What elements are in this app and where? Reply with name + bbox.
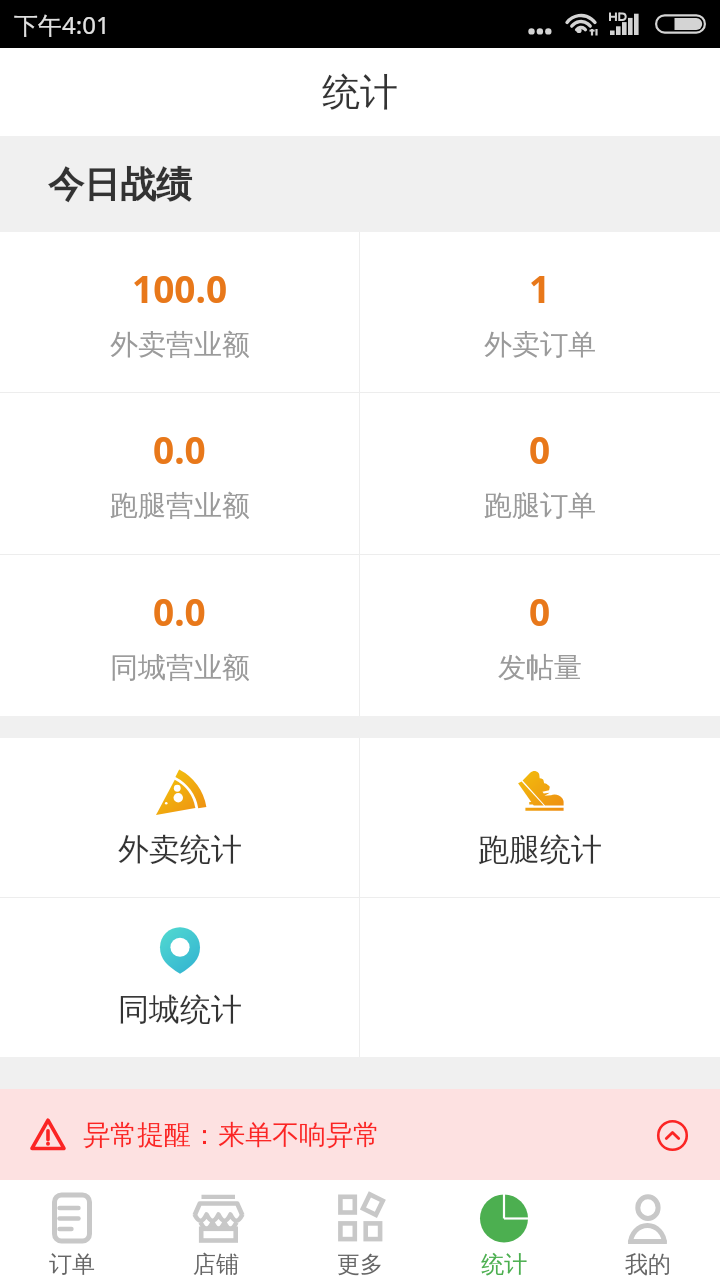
button[interactable]: 0.0 (0, 555, 359, 716)
staticText: 0 (529, 586, 551, 636)
staticText: 统计 (481, 1250, 527, 1279)
staticText: 同城营业额 (110, 650, 250, 685)
staticText: 更多 (337, 1250, 383, 1279)
staticText: 我的 (625, 1250, 671, 1279)
button[interactable]: 订单 (0, 1180, 144, 1280)
button[interactable]: 0 (360, 555, 720, 716)
staticText: 跑腿营业额 (110, 488, 250, 523)
staticText: 外卖统计 (118, 830, 242, 869)
button[interactable]: 收起异常提醒 (652, 1115, 692, 1155)
button[interactable]: 店铺 (144, 1180, 288, 1280)
button[interactable]: 0 (360, 393, 720, 554)
staticText: 下午4:01 (14, 8, 110, 41)
staticText: 0.0 (153, 586, 206, 636)
staticText: 同城统计 (118, 990, 242, 1029)
staticText: 100.0 (132, 263, 228, 313)
button[interactable]: 1 (360, 232, 720, 392)
staticText: 跑腿订单 (484, 488, 596, 523)
staticText: 外卖订单 (484, 327, 596, 362)
staticText: 统计 (322, 68, 398, 116)
staticText: 1 (529, 263, 551, 313)
button[interactable]: 异常提醒：来单不响异常 (0, 1089, 720, 1180)
button[interactable]: 100.0 (0, 232, 359, 392)
button[interactable]: 跑腿统计 (360, 738, 720, 897)
button[interactable]: 同城统计 (0, 898, 359, 1057)
button[interactable]: 统计 (432, 1180, 576, 1280)
staticText: 异常提醒：来单不响异常 (83, 1118, 380, 1152)
staticText: 跑腿统计 (478, 830, 602, 869)
button[interactable]: 0.0 (0, 393, 359, 554)
staticText: 外卖营业额 (110, 327, 250, 362)
button[interactable]: 更多 (288, 1180, 432, 1280)
staticText: 0 (529, 424, 551, 474)
staticText: 发帖量 (498, 650, 582, 685)
staticText: 订单 (49, 1250, 95, 1279)
button[interactable]: 我的 (576, 1180, 720, 1280)
staticText: 店铺 (193, 1250, 239, 1279)
button[interactable]: 外卖统计 (0, 738, 359, 897)
staticText: 今日战绩 (48, 162, 192, 207)
staticText: 0.0 (153, 424, 206, 474)
